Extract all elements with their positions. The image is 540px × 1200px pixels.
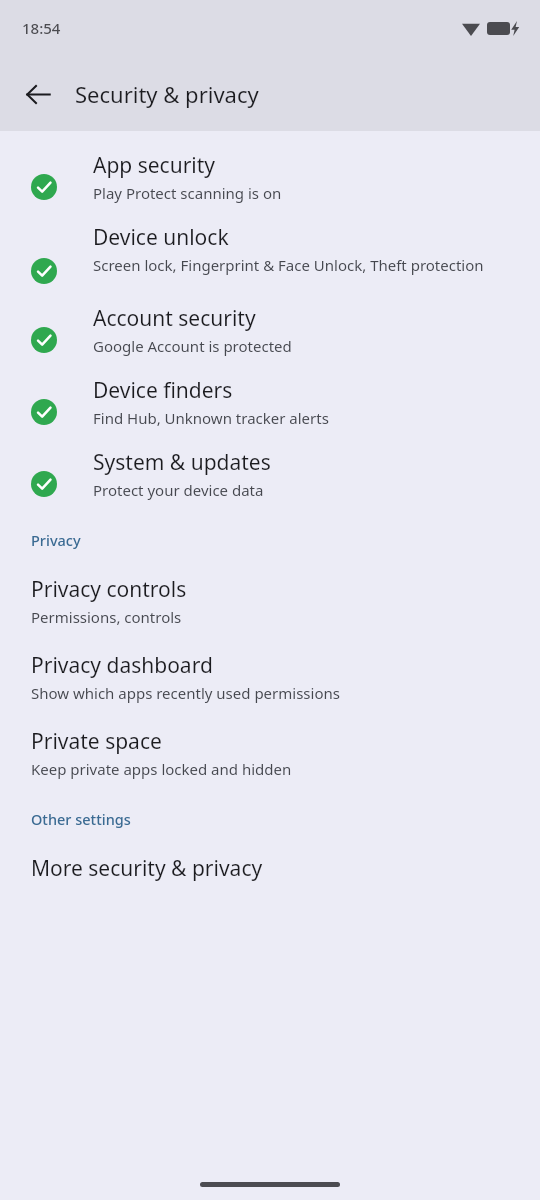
staticText: Protect your device data [93,480,264,500]
button[interactable]: Device unlock [0,213,540,294]
staticText: Show which apps recently used permission… [31,683,340,703]
staticText: Private space [31,727,162,756]
staticText: Security & privacy [75,79,259,109]
button[interactable]: More security & privacy [0,842,540,895]
staticText: 18:54 [22,18,61,38]
staticText: Device unlock [93,223,229,252]
staticText: Screen lock, Fingerprint & Face Unlock, … [93,255,484,275]
button[interactable]: System & updates [0,438,540,510]
staticText: Play Protect scanning is on [93,183,282,203]
button[interactable]: Privacy dashboard [0,639,540,715]
staticText: Find Hub, Unknown tracker alerts [93,408,329,428]
staticText: Privacy controls [31,575,187,604]
staticText: Google Account is protected [93,336,292,356]
staticText: App security [93,151,216,180]
button[interactable]: Account security [0,294,540,366]
staticText: Keep private apps locked and hidden [31,759,292,779]
staticText: Privacy dashboard [31,651,213,680]
button[interactable]: Device finders [0,366,540,438]
staticText: Device finders [93,376,233,405]
staticText: Privacy [31,530,81,550]
staticText: Other settings [31,809,131,829]
button[interactable]: Private space [0,715,540,791]
staticText: System & updates [93,448,271,477]
staticText: More security & privacy [31,854,263,883]
staticText: Permissions, controls [31,607,182,627]
button[interactable]: App security [0,141,540,213]
staticText: Account security [93,304,256,333]
button[interactable]: Privacy controls [0,563,540,639]
button[interactable]: Back [14,70,62,118]
